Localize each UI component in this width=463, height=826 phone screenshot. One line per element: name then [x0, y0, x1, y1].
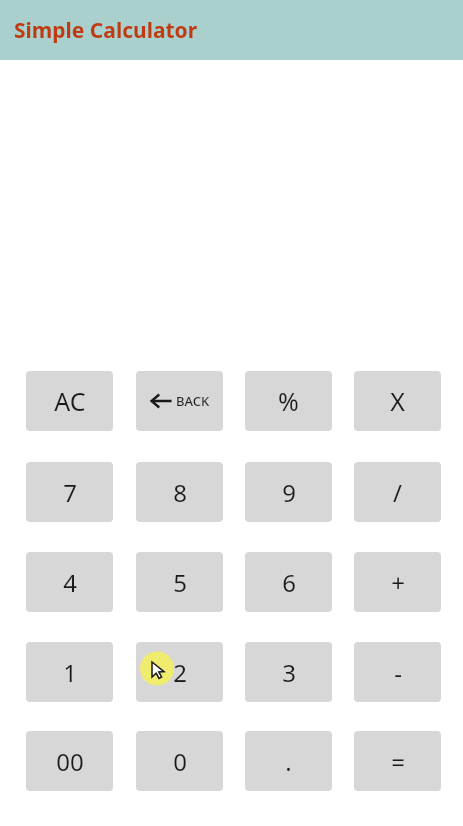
button[interactable]: 7	[26, 462, 113, 522]
button[interactable]: 4	[26, 552, 113, 612]
button[interactable]: Backspace	[136, 371, 223, 431]
staticText: -	[394, 656, 402, 689]
staticText: 2	[173, 656, 187, 689]
button[interactable]: AC	[26, 371, 113, 431]
button[interactable]: 00	[26, 731, 113, 791]
button[interactable]: +	[354, 552, 441, 612]
staticText: /	[393, 476, 402, 509]
staticText: =	[391, 745, 405, 778]
staticText: X	[390, 384, 405, 418]
button[interactable]: 9	[245, 462, 332, 522]
staticText: 3	[282, 656, 296, 689]
staticText: .	[285, 745, 292, 778]
staticText: 6	[282, 566, 296, 599]
staticText: +	[391, 566, 405, 599]
button[interactable]: 0	[136, 731, 223, 791]
button[interactable]: /	[354, 462, 441, 522]
button[interactable]: 2	[136, 642, 223, 702]
button[interactable]: %	[245, 371, 332, 431]
staticText: BACK	[176, 392, 210, 410]
staticText: Simple Calculator	[14, 16, 198, 45]
staticText: AC	[54, 384, 86, 418]
staticText: 9	[282, 476, 296, 509]
button[interactable]: 1	[26, 642, 113, 702]
button[interactable]: 5	[136, 552, 223, 612]
button[interactable]: -	[354, 642, 441, 702]
staticText: 4	[63, 566, 77, 599]
staticText: 7	[63, 476, 77, 509]
staticText: 00	[56, 745, 84, 778]
staticText: 5	[173, 566, 187, 599]
staticText: 8	[173, 476, 187, 509]
staticText: 1	[63, 656, 77, 689]
button[interactable]: .	[245, 731, 332, 791]
staticText: 0	[173, 745, 187, 778]
button[interactable]: 3	[245, 642, 332, 702]
button[interactable]: 6	[245, 552, 332, 612]
button[interactable]: X	[354, 371, 441, 431]
staticText: %	[278, 384, 299, 418]
button[interactable]: =	[354, 731, 441, 791]
button[interactable]: 8	[136, 462, 223, 522]
